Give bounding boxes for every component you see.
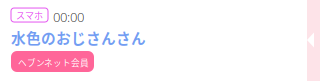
staticText: ヘブンネット会員: [18, 56, 89, 69]
button[interactable]: ヘブンネット会員: [11, 51, 94, 72]
staticText: 水色のおじさんさん: [11, 27, 146, 48]
button[interactable]: Previous: [307, 0, 320, 81]
staticText: スマホ: [16, 8, 43, 21]
staticText: 00:00: [53, 8, 84, 26]
